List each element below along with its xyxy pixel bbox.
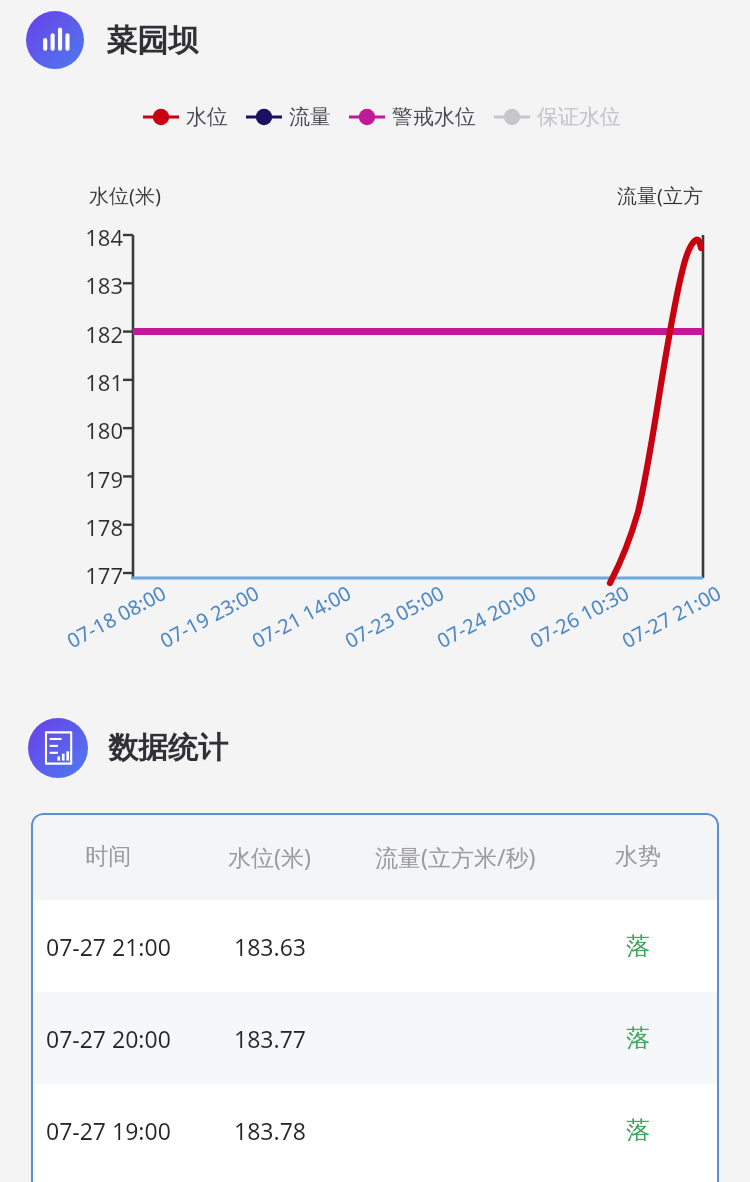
staticText: 183.77 <box>234 1023 306 1054</box>
staticText: 178 <box>79 512 123 542</box>
button[interactable]: 水位图表 <box>26 11 199 69</box>
staticText: 07-27 20:00 <box>46 1023 171 1054</box>
button[interactable]: 07-27 21:00 <box>31 900 719 992</box>
other: 水位图表 <box>26 11 84 69</box>
staticText: 流量 <box>289 104 331 130</box>
staticText: 落 <box>626 931 650 961</box>
button[interactable]: 流量 <box>246 104 331 130</box>
staticText: 水位(米) <box>89 182 161 209</box>
staticText: 07-19 23:00 <box>155 579 264 654</box>
staticText: 179 <box>79 464 123 494</box>
staticText: 180 <box>79 415 123 445</box>
staticText: 流量(立方 <box>617 182 703 209</box>
staticText: 水位 <box>186 104 228 130</box>
staticText: 183.78 <box>234 1115 306 1146</box>
staticText: 落 <box>626 1023 650 1053</box>
staticText: 07-26 10:30 <box>525 579 634 654</box>
staticText: 181 <box>79 367 123 397</box>
staticText: 07-18 08:00 <box>62 579 171 654</box>
staticText: 保证水位 <box>537 104 621 130</box>
staticText: 数据统计 <box>108 729 228 767</box>
staticText: 水势 <box>615 842 661 871</box>
button[interactable]: 07-27 19:00 <box>31 1084 719 1176</box>
staticText: 184 <box>79 222 123 252</box>
staticText: 菜园坝 <box>106 21 199 60</box>
staticText: 07-27 21:00 <box>46 931 171 962</box>
staticText: 183 <box>79 270 123 300</box>
staticText: 07-24 20:00 <box>432 579 541 654</box>
staticText: 07-27 19:00 <box>46 1115 171 1146</box>
staticText: 183.63 <box>234 931 306 962</box>
staticText: 182 <box>79 319 123 349</box>
button[interactable]: 保证水位 <box>494 104 621 130</box>
staticText: 07-21 14:00 <box>247 579 356 654</box>
staticText: 流量(立方米/秒) <box>375 841 536 872</box>
button[interactable]: 水位 <box>143 104 228 130</box>
staticText: 警戒水位 <box>392 104 476 130</box>
staticText: 07-27 21:00 <box>617 579 726 654</box>
button[interactable]: 数据统计 <box>28 718 228 778</box>
staticText: 水位(米) <box>228 841 311 872</box>
button[interactable]: 07-27 20:00 <box>31 992 719 1084</box>
staticText: 时间 <box>85 842 131 871</box>
staticText: 落 <box>626 1115 650 1145</box>
other: 数据统计 <box>28 718 88 778</box>
staticText: 07-23 05:00 <box>340 579 449 654</box>
button[interactable]: 警戒水位 <box>349 104 476 130</box>
staticText: 177 <box>79 560 123 590</box>
